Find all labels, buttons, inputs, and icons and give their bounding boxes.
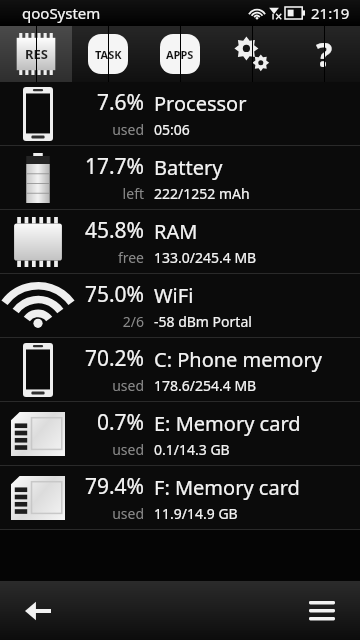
staticText: TASK: [95, 47, 122, 62]
button[interactable]: Menu: [298, 587, 346, 635]
staticText: 7.6%: [76, 88, 144, 117]
button[interactable]: ?: [288, 26, 360, 82]
button[interactable]: [216, 26, 288, 82]
staticText: 70.2%: [76, 344, 144, 373]
staticText: 05:06: [154, 120, 190, 139]
staticText: 45.8%: [76, 216, 144, 245]
button[interactable]: 70.2%: [0, 338, 360, 402]
staticText: qooSystem: [22, 3, 101, 23]
staticText: 0.7%: [76, 408, 144, 437]
staticText: used: [76, 376, 144, 395]
staticText: Battery: [154, 154, 223, 181]
staticText: 75.0%: [76, 280, 144, 309]
staticText: C: Phone memory: [154, 346, 322, 373]
button[interactable]: 75.0%: [0, 274, 360, 338]
staticText: left: [76, 184, 144, 203]
staticText: ?: [316, 31, 333, 77]
staticText: WiFi: [154, 282, 194, 309]
staticText: free: [76, 248, 144, 267]
button[interactable]: 7.6%: [0, 82, 360, 146]
button[interactable]: RES: [0, 26, 72, 82]
staticText: RAM: [154, 218, 198, 245]
staticText: 2/6: [76, 312, 144, 331]
button[interactable]: 79.4%: [0, 466, 360, 530]
staticText: used: [76, 440, 144, 459]
staticText: F: Memory card: [154, 474, 300, 501]
staticText: -58 dBm Portal: [154, 312, 252, 331]
staticText: 133.0/245.4 MB: [154, 248, 257, 267]
button[interactable]: 45.8%: [0, 210, 360, 274]
staticText: used: [76, 504, 144, 523]
staticText: 21:19: [311, 3, 350, 23]
staticText: 222/1252 mAh: [154, 184, 250, 203]
staticText: APPS: [166, 47, 194, 62]
button[interactable]: 0.7%: [0, 402, 360, 466]
button[interactable]: 17.7%: [0, 146, 360, 210]
staticText: 79.4%: [76, 472, 144, 501]
staticText: Processor: [154, 90, 247, 117]
button[interactable]: TASK: [72, 26, 144, 82]
button[interactable]: APPS: [144, 26, 216, 82]
staticText: 178.6/254.4 MB: [154, 376, 257, 395]
staticText: RES: [25, 45, 48, 63]
staticText: used: [76, 120, 144, 139]
staticText: 17.7%: [76, 152, 144, 181]
staticText: 0.1/14.3 GB: [154, 440, 230, 459]
button[interactable]: Back: [14, 587, 62, 635]
staticText: E: Memory card: [154, 410, 301, 437]
staticText: 11.9/14.9 GB: [154, 504, 238, 523]
